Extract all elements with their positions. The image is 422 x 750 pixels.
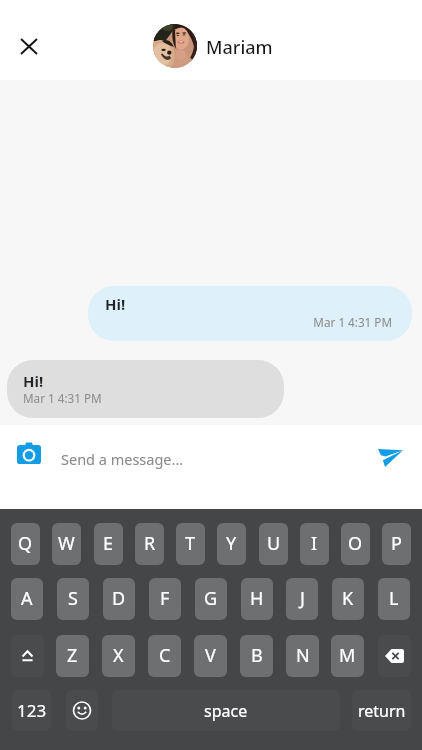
button[interactable]: U: [259, 523, 288, 565]
button[interactable]: Q: [11, 523, 40, 565]
button[interactable]: K: [332, 578, 364, 620]
staticText: F: [160, 586, 170, 611]
button[interactable]: A: [11, 578, 43, 620]
button[interactable]: L: [378, 578, 410, 620]
button[interactable]: Emoji: [66, 690, 98, 731]
button[interactable]: Hi!: [88, 286, 412, 341]
staticText: Hi!: [105, 294, 126, 314]
button[interactable]: Shift: [11, 635, 44, 677]
button[interactable]: C: [148, 635, 181, 677]
button[interactable]: Hi!: [7, 360, 284, 418]
staticText: C: [159, 643, 171, 668]
staticText: space: [204, 700, 248, 722]
button[interactable]: Z: [56, 635, 89, 677]
staticText: O: [348, 531, 363, 556]
staticText: return: [358, 700, 406, 722]
button[interactable]: B: [240, 635, 273, 677]
staticText: U: [267, 531, 281, 556]
button[interactable]: S: [57, 578, 89, 620]
staticText: D: [112, 586, 126, 611]
staticText: E: [103, 531, 114, 556]
button[interactable]: F: [149, 578, 181, 620]
staticText: 123: [17, 699, 47, 722]
staticText: B: [251, 643, 263, 668]
button[interactable]: P: [382, 523, 411, 565]
staticText: Hi!: [23, 371, 44, 391]
staticText: G: [204, 586, 218, 611]
staticText: J: [300, 586, 305, 611]
button[interactable]: J: [286, 578, 318, 620]
staticText: Mar 1 4:31 PM: [23, 390, 102, 406]
button[interactable]: Backspace: [378, 635, 411, 677]
staticText: Mariam: [206, 35, 273, 60]
button[interactable]: G: [195, 578, 227, 620]
button[interactable]: M: [331, 635, 364, 677]
staticText: S: [68, 586, 78, 611]
staticText: X: [113, 643, 124, 668]
button[interactable]: N: [286, 635, 319, 677]
staticText: Y: [226, 531, 237, 556]
button[interactable]: E: [94, 523, 123, 565]
staticText: R: [144, 531, 156, 556]
staticText: P: [391, 531, 402, 556]
button[interactable]: R: [135, 523, 164, 565]
button[interactable]: H: [241, 578, 273, 620]
staticText: A: [21, 586, 33, 611]
staticText: Q: [18, 531, 33, 556]
staticText: T: [185, 531, 196, 556]
staticText: N: [296, 643, 310, 668]
button[interactable]: Y: [217, 523, 246, 565]
staticText: K: [342, 586, 354, 611]
staticText: W: [58, 531, 75, 556]
button[interactable]: Camera: [11, 436, 47, 472]
button[interactable]: D: [103, 578, 135, 620]
staticText: L: [389, 586, 399, 611]
staticText: H: [250, 586, 264, 611]
staticText: M: [339, 643, 356, 668]
staticText: Send a message...: [61, 449, 184, 469]
staticText: I: [311, 531, 318, 556]
button[interactable]: W: [52, 523, 81, 565]
button[interactable]: V: [194, 635, 227, 677]
button[interactable]: O: [341, 523, 370, 565]
button[interactable]: space: [112, 690, 340, 731]
staticText: V: [205, 643, 216, 668]
staticText: Z: [67, 643, 78, 668]
button[interactable]: 123: [12, 690, 51, 731]
button[interactable]: I: [300, 523, 329, 565]
button[interactable]: X: [102, 635, 135, 677]
button[interactable]: T: [176, 523, 205, 565]
button[interactable]: Close: [7, 24, 51, 68]
staticText: Mar 1 4:31 PM: [88, 314, 392, 330]
button[interactable]: return: [352, 690, 411, 731]
button[interactable]: Send a message...: [55, 433, 365, 465]
button[interactable]: Send: [371, 439, 409, 477]
